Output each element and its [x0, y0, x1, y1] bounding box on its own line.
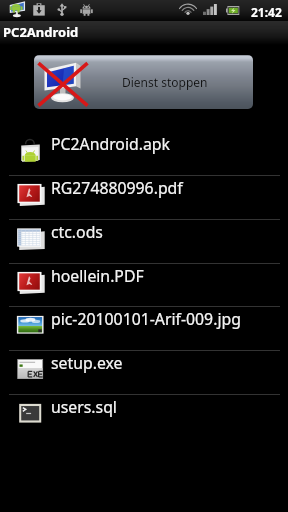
- button[interactable]: hoellein.PDF: [0, 263, 288, 306]
- staticText: Dienst stoppen: [122, 74, 208, 90]
- button[interactable]: PC2Android.apk: [0, 131, 288, 175]
- button[interactable]: ctc.ods: [0, 219, 288, 263]
- staticText: hoellein.PDF: [51, 265, 144, 287]
- staticText: 21:42: [251, 4, 282, 20]
- button[interactable]: Dienst stoppen: [34, 55, 253, 109]
- button[interactable]: RG274880996.pdf: [0, 175, 288, 219]
- staticText: PC2Android.apk: [51, 133, 170, 155]
- staticText: RG274880996.pdf: [51, 177, 183, 199]
- button[interactable]: pic-20100101-Arif-009.jpg: [0, 306, 288, 350]
- button[interactable]: users.sql: [0, 394, 288, 438]
- staticText: ctc.ods: [51, 221, 103, 243]
- button[interactable]: setup.exe: [0, 350, 288, 394]
- staticText: PC2Android: [3, 23, 79, 41]
- staticText: users.sql: [51, 396, 117, 418]
- staticText: setup.exe: [51, 352, 123, 374]
- staticText: pic-20100101-Arif-009.jpg: [51, 308, 241, 330]
